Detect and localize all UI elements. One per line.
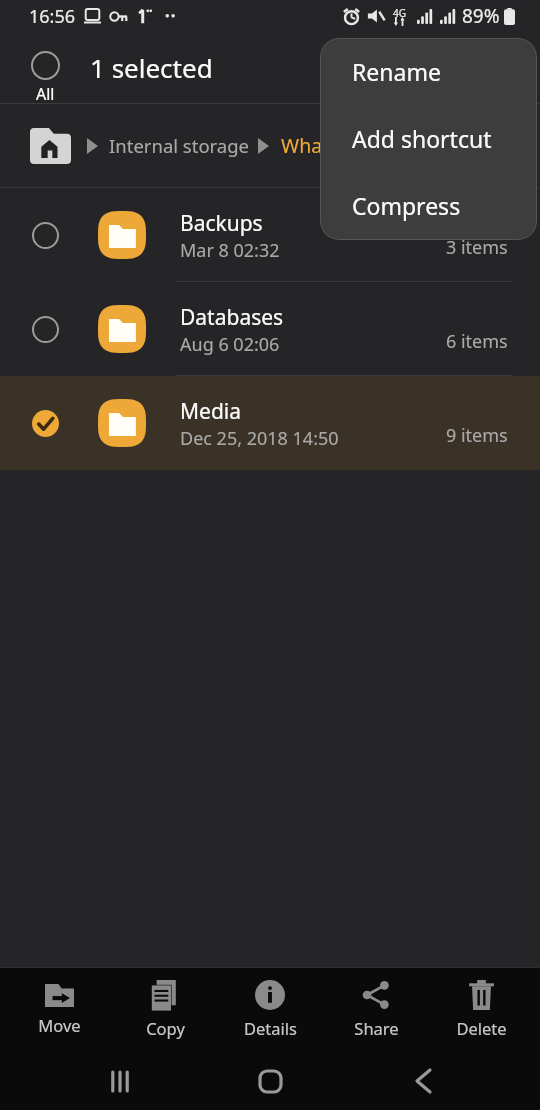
staticText: 9 items [446,423,508,448]
button[interactable]: Back [403,1061,443,1101]
staticText: Move [38,1014,81,1036]
staticText: Whatsapp [281,132,374,159]
staticText: Internal storage [109,133,250,158]
staticText: Add shortcut [352,123,492,154]
button[interactable]: Copy [113,980,217,1039]
staticText: Share [354,1017,399,1039]
staticText: All [36,83,55,105]
staticText: Databases [180,303,284,332]
staticText: Delete [456,1017,507,1039]
button[interactable]: Media [0,376,540,470]
staticText: Mar 8 02:32 [180,238,280,263]
staticText: Media [180,397,242,426]
button[interactable]: Home [250,1061,290,1101]
staticText: 6 items [446,329,508,354]
staticText: Backups [180,209,263,238]
staticText: Details [244,1017,297,1039]
button[interactable]: Share [324,980,428,1039]
button[interactable]: Recents [100,1061,140,1101]
button[interactable]: Add shortcut [320,105,537,172]
staticText: Aug 6 02:06 [180,332,280,357]
staticText: Dec 25, 2018 14:50 [180,426,339,451]
staticText: Compress [352,190,461,221]
button[interactable]: Databases [0,282,540,376]
staticText: 16:56 [29,4,76,29]
staticText: Rename [352,56,441,87]
button[interactable]: Compress [320,172,537,239]
staticText: 4G [393,6,406,20]
button[interactable]: Details [218,980,322,1039]
staticText: 3 items [446,235,508,260]
button[interactable]: Select all [23,51,67,105]
button[interactable]: Rename [320,38,537,105]
staticText: 89% [462,3,500,29]
staticText: 1 selected [90,50,213,85]
button[interactable]: Backups [0,188,540,282]
button[interactable]: Home [30,128,71,164]
button[interactable]: Delete [429,980,533,1039]
button[interactable]: Move [7,983,111,1036]
staticText: Copy [146,1017,185,1039]
